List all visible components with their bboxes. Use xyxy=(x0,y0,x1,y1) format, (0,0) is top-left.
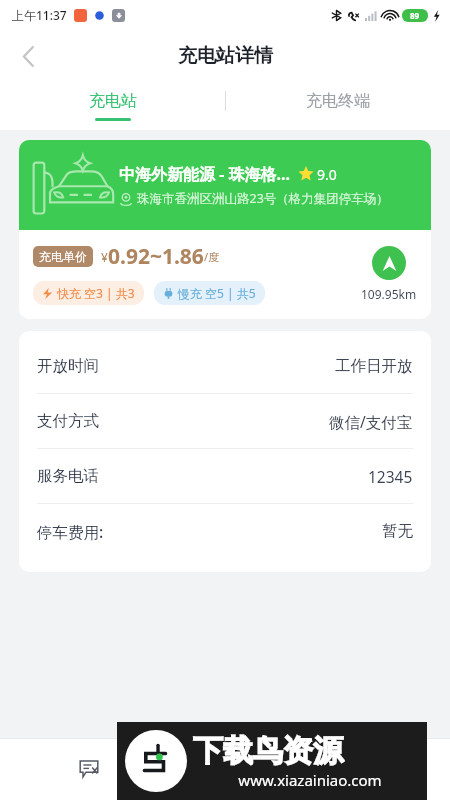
staticText: 珠海市香洲区洲山路23号（格力集团停车场） xyxy=(137,190,389,207)
button[interactable]: 支付方式 xyxy=(37,394,413,448)
staticText: 停车费用: xyxy=(37,521,104,542)
staticText: 109.95km xyxy=(361,286,417,302)
staticText: 充电单价 xyxy=(39,249,87,264)
staticText: 9.0 xyxy=(317,165,337,184)
staticText: 12345 xyxy=(368,466,413,487)
button[interactable]: 充电站 xyxy=(0,82,225,130)
staticText: 服务电话 xyxy=(37,466,99,486)
staticText: ¥ xyxy=(101,249,108,265)
staticText: 充电终端 xyxy=(306,91,370,111)
button[interactable]: Back xyxy=(8,36,48,76)
button[interactable]: Navigate xyxy=(355,246,417,302)
staticText: /度 xyxy=(204,249,220,264)
staticText: 支付方式 xyxy=(37,411,99,431)
button[interactable]: Feedback xyxy=(72,752,106,786)
staticText: 暂无 xyxy=(382,521,413,541)
staticText: 开放时间 xyxy=(37,356,99,376)
staticText: 中海外新能源 - 珠海格... xyxy=(119,163,290,185)
button[interactable]: 服务电话 xyxy=(37,449,413,503)
staticText: 89 xyxy=(410,10,420,21)
staticText: 下载鸟资源 xyxy=(193,732,343,770)
staticText: 慢充 空5 | 共5 xyxy=(178,285,256,301)
staticText: 工作日开放 xyxy=(335,356,413,376)
button[interactable]: 充电终端 xyxy=(225,82,450,130)
button[interactable]: 快充 空3 | 共3 xyxy=(33,281,144,305)
staticText: 上午11:37 xyxy=(12,7,67,23)
staticText: 充电站 xyxy=(89,91,137,111)
staticText: 微信/支付宝 xyxy=(329,411,413,432)
button[interactable]: 停车费用: xyxy=(37,504,413,558)
button[interactable]: 开放时间 xyxy=(37,339,413,393)
staticText: www.xiazainiao.com xyxy=(193,770,427,790)
staticText: 快充 空3 | 共3 xyxy=(57,285,135,301)
button[interactable]: 慢充 空5 | 共5 xyxy=(154,281,265,305)
staticText: 0.92~1.86 xyxy=(108,242,204,271)
staticText: 充电站详情 xyxy=(178,44,273,68)
